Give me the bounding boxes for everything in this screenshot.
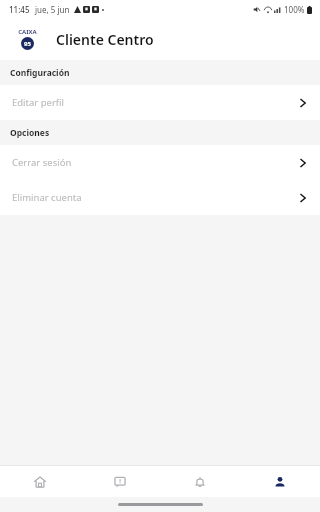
staticText: Cliente Centro bbox=[56, 30, 154, 49]
staticText: 95 bbox=[24, 40, 31, 48]
staticText: CAIXA bbox=[18, 28, 37, 36]
staticText: Configuración bbox=[10, 67, 70, 79]
staticText: Opciones bbox=[10, 127, 50, 139]
button[interactable]: Profile bbox=[240, 466, 320, 497]
staticText: 11:45 bbox=[9, 4, 30, 15]
staticText: jue, 5 jun bbox=[35, 4, 70, 15]
staticText: 100% bbox=[284, 4, 305, 15]
staticText: Editar perfil bbox=[12, 96, 65, 109]
button[interactable]: Editar perfil bbox=[0, 85, 320, 120]
button[interactable]: Cerrar sesión bbox=[0, 145, 320, 180]
staticText: Cerrar sesión bbox=[12, 156, 72, 169]
staticText: Eliminar cuenta bbox=[12, 191, 82, 204]
button[interactable]: Eliminar cuenta bbox=[0, 180, 320, 215]
button[interactable]: Home bbox=[0, 466, 80, 497]
button[interactable]: Notifications bbox=[160, 466, 240, 497]
button[interactable]: Messages bbox=[80, 466, 160, 497]
